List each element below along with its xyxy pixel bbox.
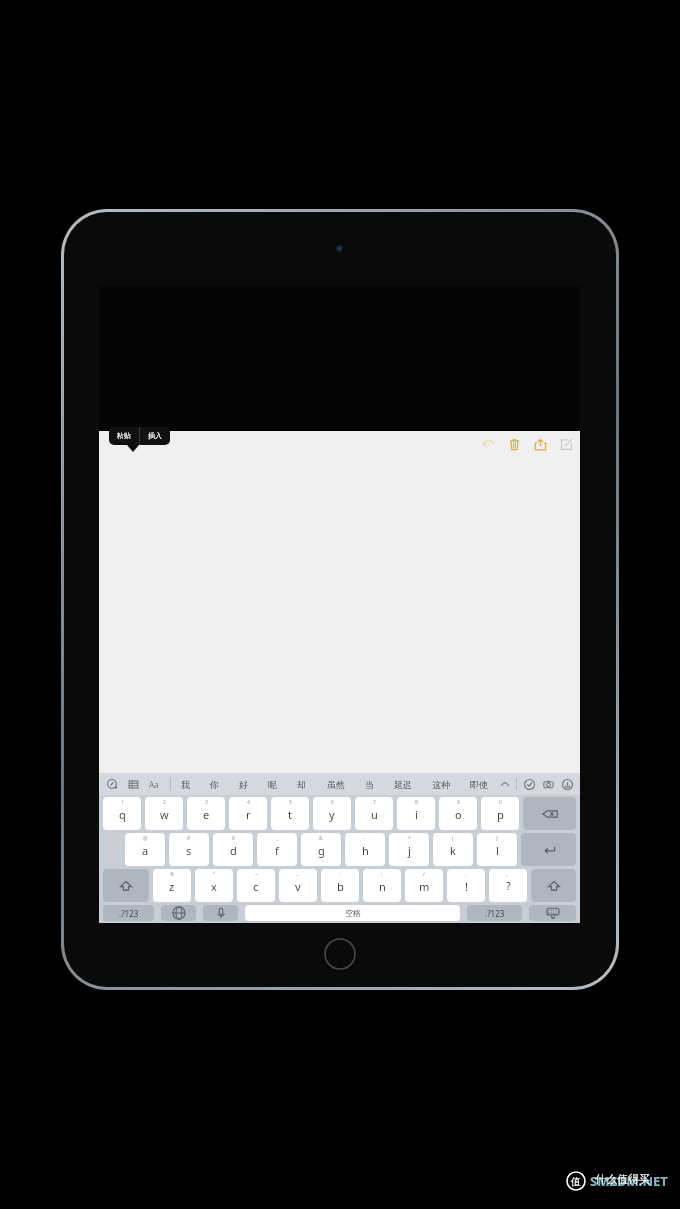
button[interactable]: 当 [362, 777, 377, 792]
button[interactable]: ( [433, 833, 473, 866]
staticText: 1 [121, 799, 124, 806]
button[interactable]: … [279, 869, 317, 902]
button[interactable]: 7 [355, 797, 393, 830]
staticText: / [423, 871, 425, 878]
button[interactable]: 1 [103, 797, 141, 830]
button[interactable]: - [345, 833, 385, 866]
button[interactable]: Handwriting [104, 776, 120, 792]
button[interactable]: % [153, 869, 191, 902]
button[interactable]: Home [324, 938, 356, 970]
button[interactable]: Hide keyboard [529, 905, 576, 921]
button[interactable]: Shift [103, 869, 149, 902]
button[interactable]: 4 [229, 797, 267, 830]
staticText: 7 [373, 799, 376, 806]
button[interactable]: Layout [125, 776, 141, 792]
button[interactable]: + [389, 833, 429, 866]
button[interactable]: _ [257, 833, 297, 866]
staticText: t [288, 807, 292, 822]
button[interactable]: 空格 [245, 905, 460, 921]
staticText: g [318, 843, 325, 858]
button[interactable]: 2 [145, 797, 183, 830]
staticText: 却 [297, 779, 306, 790]
button[interactable]: 6 [313, 797, 351, 830]
button[interactable]: Return [521, 833, 576, 866]
button[interactable]: 3 [187, 797, 225, 830]
staticText: : [339, 871, 341, 878]
button[interactable]: 9 [439, 797, 477, 830]
button[interactable]: 8 [397, 797, 435, 830]
button[interactable]: " [195, 869, 233, 902]
staticText: v [295, 879, 301, 894]
button[interactable]: ~ [237, 869, 275, 902]
button[interactable]: More [498, 777, 512, 791]
staticText: .?123 [119, 908, 139, 919]
button[interactable]: Camera [540, 776, 556, 792]
button[interactable]: 0 [481, 797, 519, 830]
staticText: k [450, 843, 456, 858]
staticText: a [142, 843, 149, 858]
staticText: z [169, 879, 175, 894]
button[interactable]: ) [477, 833, 517, 866]
button[interactable]: 我 [178, 777, 193, 792]
staticText: & [319, 835, 323, 842]
button[interactable]: Voice [559, 776, 575, 792]
staticText: j [408, 843, 411, 858]
staticText: ~ [255, 871, 258, 878]
button[interactable]: 5 [271, 797, 309, 830]
staticText: ? [506, 878, 511, 893]
button[interactable]: Delete [506, 436, 522, 452]
button[interactable]: @ [125, 833, 165, 866]
button[interactable]: ; [363, 869, 401, 902]
button[interactable]: 虽然 [324, 777, 348, 792]
staticText: … [296, 871, 300, 878]
staticText: , [465, 871, 467, 878]
staticText: ( [452, 835, 454, 842]
button[interactable]: / [405, 869, 443, 902]
staticText: - [364, 835, 366, 842]
button[interactable]: 这种 [429, 777, 453, 792]
button[interactable]: & [301, 833, 341, 866]
staticText: y [329, 807, 335, 822]
staticText: ; [381, 871, 383, 878]
staticText: 你 [210, 779, 219, 790]
button[interactable]: 却 [294, 777, 309, 792]
button[interactable]: Dictation [203, 905, 238, 921]
staticText: 空格 [345, 908, 361, 918]
staticText: 虽然 [327, 779, 345, 790]
staticText: 即使 [470, 779, 488, 790]
button[interactable]: ¥ [213, 833, 253, 866]
button[interactable]: Compose [558, 436, 574, 452]
button[interactable]: : [321, 869, 359, 902]
staticText: 当 [365, 779, 374, 790]
button[interactable]: 插入 [140, 427, 170, 444]
staticText: r [246, 807, 251, 822]
button[interactable]: 。 [489, 869, 527, 902]
staticText: 9 [457, 799, 460, 806]
button[interactable]: Language [161, 905, 196, 921]
button[interactable]: 粘贴 [109, 427, 139, 444]
button[interactable]: Backspace [523, 797, 576, 830]
staticText: o [455, 807, 462, 822]
button[interactable]: .?123 [103, 905, 154, 921]
button[interactable]: Shift [531, 869, 576, 902]
button[interactable]: , [447, 869, 485, 902]
button[interactable]: 好 [236, 777, 251, 792]
staticText: s [186, 843, 192, 858]
button[interactable]: 呢 [265, 777, 280, 792]
button[interactable]: Share [532, 436, 548, 452]
button[interactable]: # [169, 833, 209, 866]
staticText: 。 [506, 871, 511, 877]
staticText: h [362, 843, 369, 858]
staticText: q [119, 807, 126, 822]
button[interactable]: .?123 [467, 905, 522, 921]
staticText: 延迟 [394, 779, 412, 790]
button[interactable]: 延迟 [391, 777, 415, 792]
staticText: 值 [571, 1175, 581, 1188]
button[interactable]: Confirm [521, 776, 537, 792]
button[interactable]: Undo [480, 436, 496, 452]
staticText: % [170, 871, 175, 878]
button[interactable]: Aa [146, 776, 162, 792]
staticText: @ [143, 835, 148, 842]
button[interactable]: 即使 [467, 777, 491, 792]
button[interactable]: 你 [207, 777, 222, 792]
